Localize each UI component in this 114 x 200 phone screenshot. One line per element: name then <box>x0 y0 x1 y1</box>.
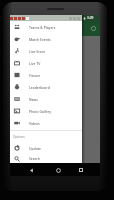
button[interactable]: Back <box>27 166 35 174</box>
staticText: Live Score <box>29 49 46 54</box>
button[interactable]: More options <box>90 25 96 31</box>
staticText: Videos <box>29 121 40 126</box>
staticText: Leaderboard <box>29 85 50 90</box>
button[interactable]: Teams & Players <box>10 21 82 33</box>
button[interactable]: Search <box>10 154 82 163</box>
button[interactable]: Photo Gallery <box>10 105 82 117</box>
staticText: 3:29 <box>87 16 94 20</box>
button[interactable]: Fixture <box>10 69 82 81</box>
staticText: Match Events <box>29 37 51 42</box>
staticText: Live TV <box>29 61 41 66</box>
button[interactable]: News <box>10 93 82 105</box>
button[interactable]: Update <box>10 142 82 154</box>
staticText: Search <box>29 156 40 161</box>
staticText: Fixture <box>29 73 41 78</box>
button[interactable]: Videos <box>10 117 82 129</box>
button[interactable]: Home <box>54 166 62 174</box>
staticText: Photo Gallery <box>29 109 51 114</box>
button[interactable]: Live Score <box>10 45 82 57</box>
button[interactable]: Match Events <box>10 33 82 45</box>
staticText: News <box>29 97 38 102</box>
button[interactable]: Recent apps <box>77 166 85 174</box>
staticText: Options <box>13 135 25 139</box>
button[interactable]: Live TV <box>10 57 82 69</box>
staticText: Teams & Players <box>29 25 56 30</box>
button[interactable]: Leaderboard <box>10 81 82 93</box>
staticText: Update <box>29 146 41 151</box>
